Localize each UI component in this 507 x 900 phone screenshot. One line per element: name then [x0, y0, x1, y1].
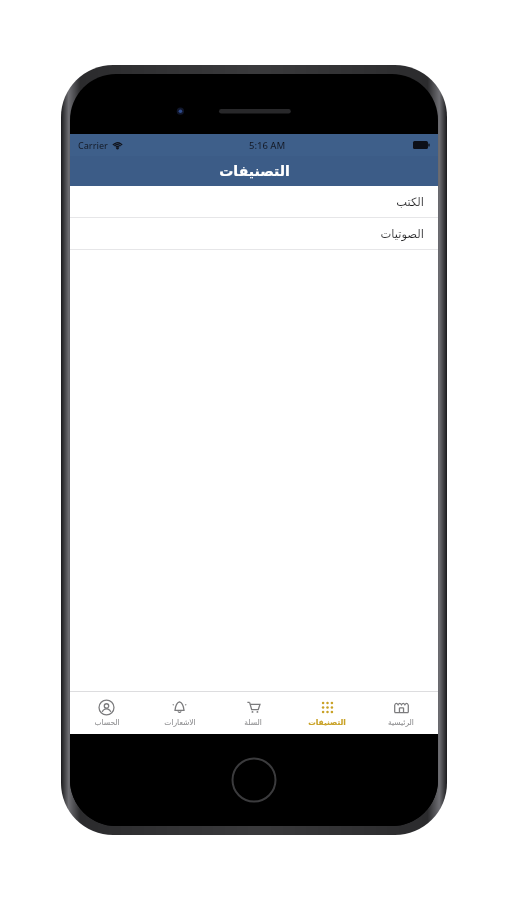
staticText: السلة — [244, 718, 262, 727]
staticText: الحساب — [94, 718, 120, 727]
button[interactable]: الصوتيات — [70, 218, 438, 249]
staticText: الاشعارات — [164, 718, 196, 727]
staticText: Carrier — [78, 139, 108, 151]
button[interactable]: الاشعارات — [143, 692, 216, 734]
button[interactable]: الرئيسية — [364, 692, 438, 734]
staticText: التصنيفات — [308, 718, 346, 727]
button[interactable]: الحساب — [70, 692, 143, 734]
button[interactable]: السلة — [216, 692, 290, 734]
staticText: الكتب — [396, 195, 424, 208]
button[interactable]: الكتب — [70, 186, 438, 217]
staticText: التصنيفات — [219, 163, 290, 179]
staticText: الرئيسية — [388, 718, 414, 727]
button[interactable]: التصنيفات — [290, 692, 364, 734]
staticText: 5:16 AM — [249, 139, 286, 152]
staticText: الصوتيات — [380, 227, 424, 240]
